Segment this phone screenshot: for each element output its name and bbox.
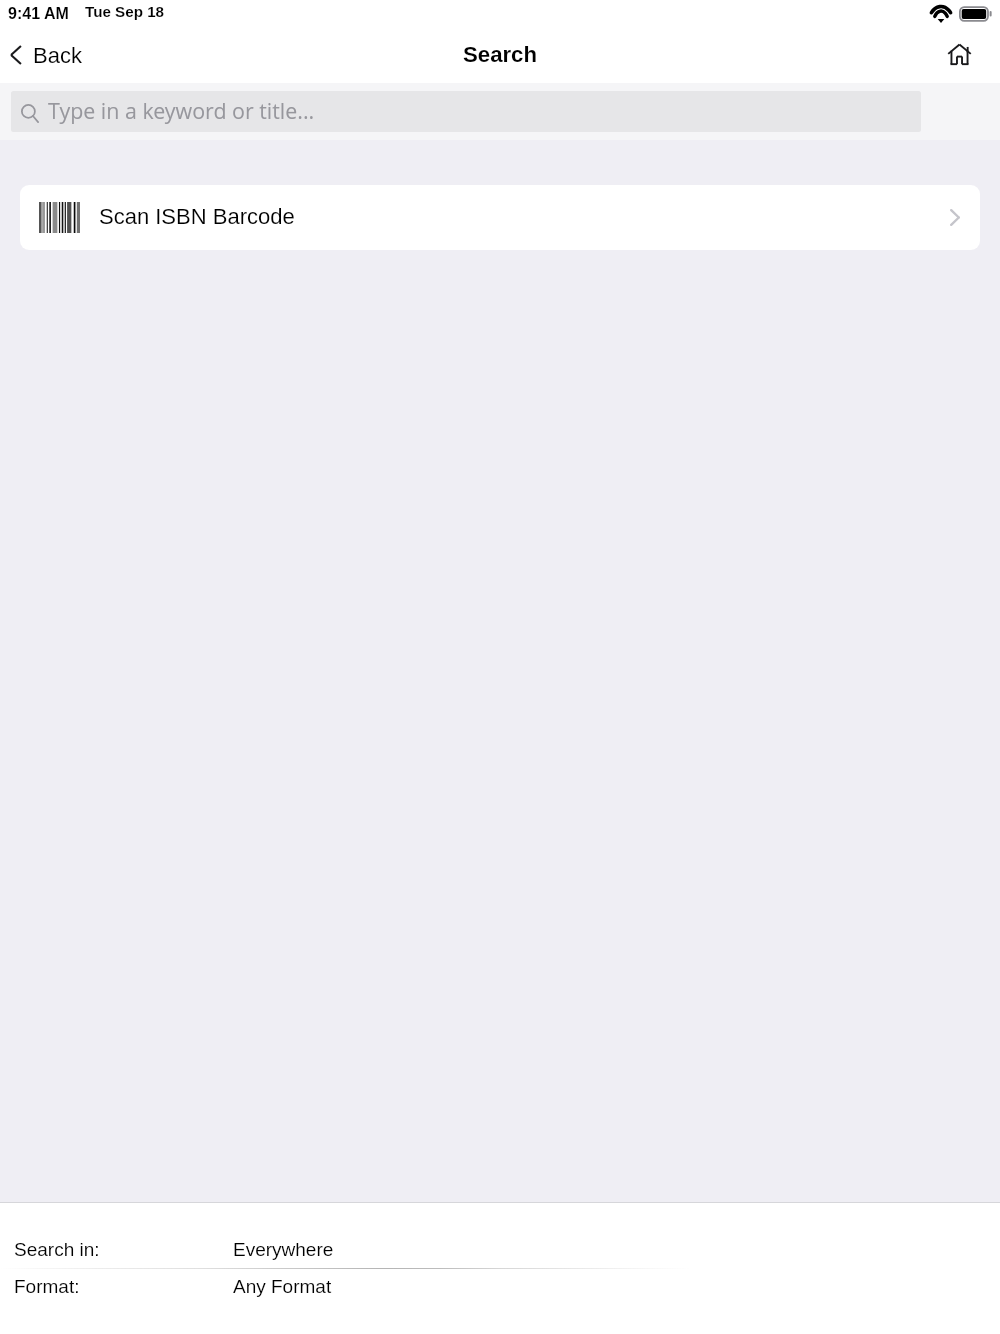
staticText: Everywhere: [233, 1239, 334, 1260]
staticText: Back: [33, 43, 82, 68]
button[interactable]: Back: [0, 36, 96, 77]
staticText: Type in a keyword or title...: [48, 96, 315, 125]
staticText: Format:: [14, 1276, 80, 1297]
staticText: Tue Sep 18: [85, 3, 165, 20]
staticText: Any Format: [233, 1276, 332, 1297]
button[interactable]: Search field: [11, 91, 921, 132]
staticText: Search in:: [14, 1239, 100, 1260]
button[interactable]: Format:: [0, 1273, 1000, 1299]
button[interactable]: Scan ISBN Barcode: [20, 185, 980, 250]
staticText: 9:41 AM: [8, 5, 69, 23]
staticText: Search: [463, 42, 538, 67]
button[interactable]: Search in:: [0, 1236, 1000, 1262]
button[interactable]: Home: [931, 36, 1000, 77]
staticText: Scan ISBN Barcode: [99, 204, 295, 229]
